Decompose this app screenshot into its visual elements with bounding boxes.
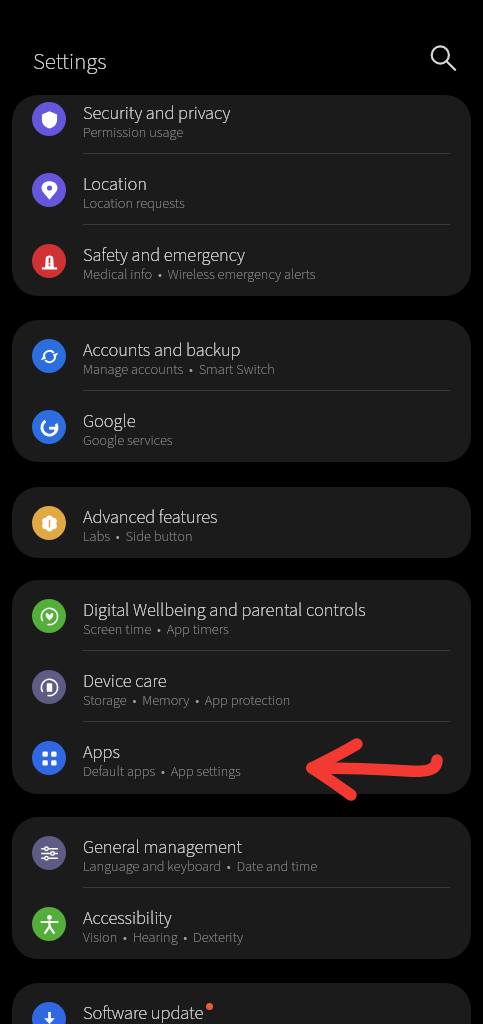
staticText: Security and privacy (83, 100, 231, 126)
staticText: Labs • Side button (83, 526, 193, 547)
button[interactable]: General management (12, 817, 471, 888)
staticText: Vision • Hearing • Dexterity (83, 927, 243, 948)
staticText: Medical info • Wireless emergency alerts (83, 264, 316, 285)
staticText: Google (83, 408, 136, 434)
staticText: Advanced features (83, 504, 218, 530)
button[interactable]: Accessibility (12, 888, 471, 959)
staticText: Digital Wellbeing and parental controls (83, 597, 366, 623)
staticText: Location (83, 171, 147, 197)
button[interactable]: Google (12, 391, 471, 462)
staticText: Default apps • App settings (83, 761, 241, 782)
button[interactable]: Advanced features (12, 487, 471, 558)
staticText: Permission usage (83, 122, 184, 143)
staticText: Safety and emergency (83, 242, 245, 268)
staticText: Language and keyboard • Date and time (83, 856, 318, 877)
button[interactable]: Apps (12, 722, 471, 793)
staticText: Accessibility (83, 905, 172, 931)
staticText: Accounts and backup (83, 337, 241, 363)
staticText: Storage • Memory • App protection (83, 690, 291, 711)
button[interactable]: Security and privacy (12, 95, 471, 154)
staticText: Manage accounts • Smart Switch (83, 359, 275, 380)
staticText: General management (83, 834, 243, 860)
staticText: Download and install (83, 1022, 204, 1024)
button[interactable]: Safety and emergency (12, 225, 471, 284)
staticText: Device care (83, 668, 167, 694)
button[interactable]: Digital Wellbeing and parental controls (12, 580, 471, 651)
button[interactable]: Search (421, 37, 461, 77)
button[interactable]: Device care (12, 651, 471, 722)
button[interactable]: Software update (12, 983, 471, 1024)
staticText: Settings (33, 45, 107, 78)
staticText: Google services (83, 430, 173, 451)
button[interactable]: Location (12, 154, 471, 225)
staticText: Software update (83, 1000, 204, 1024)
button[interactable]: Accounts and backup (12, 320, 471, 391)
staticText: Location requests (83, 193, 185, 214)
staticText: Screen time • App timers (83, 619, 229, 640)
staticText: Apps (83, 739, 120, 765)
